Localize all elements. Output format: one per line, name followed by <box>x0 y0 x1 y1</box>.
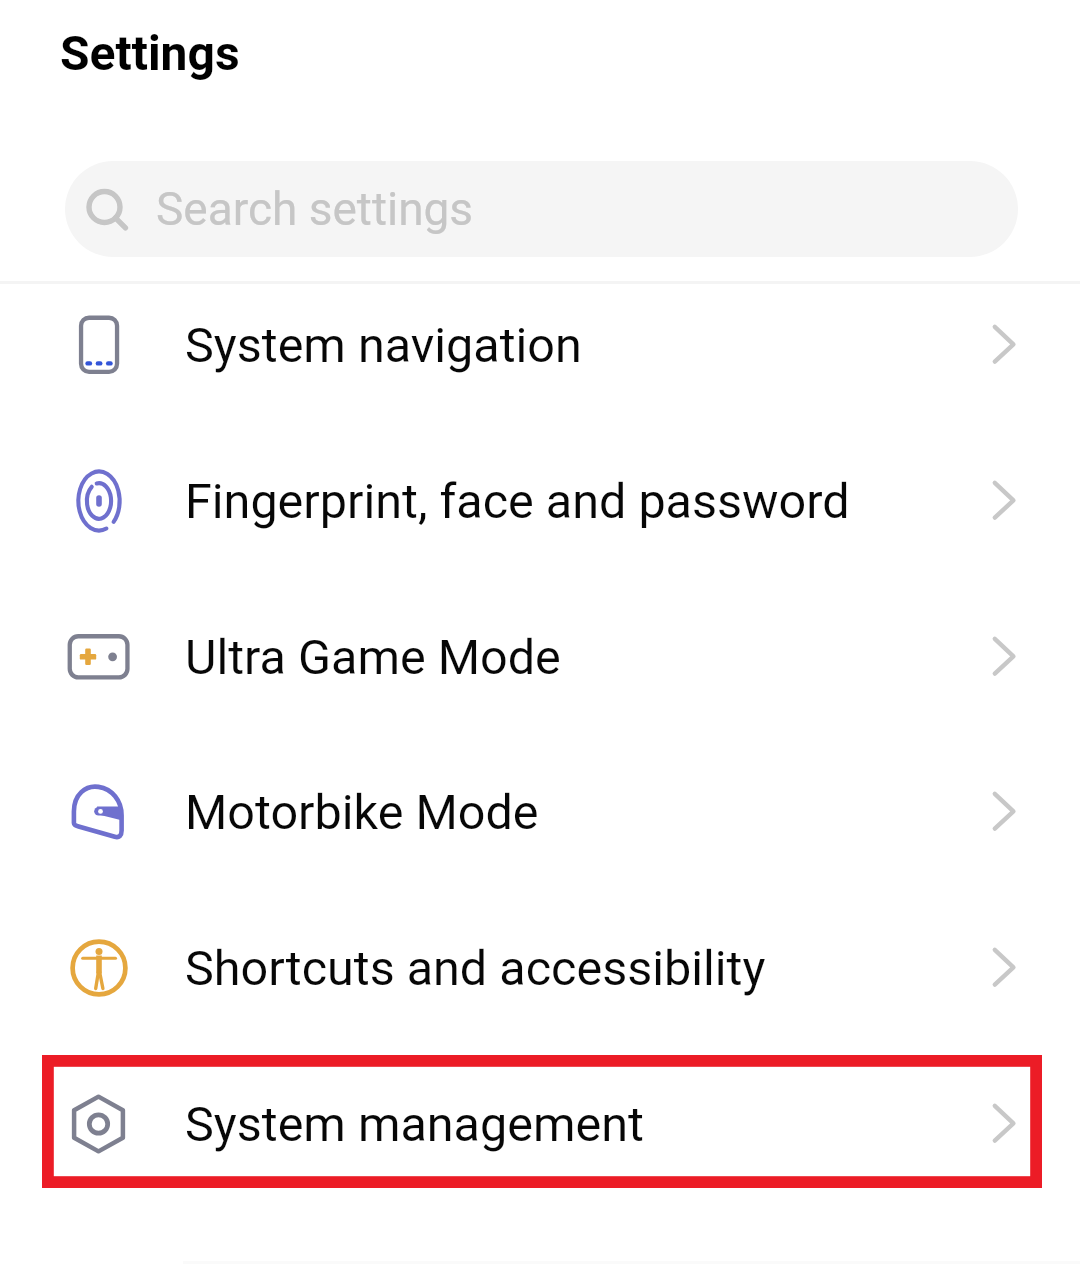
button[interactable]: Motorbike Mode <box>0 734 1080 890</box>
staticText: System navigation <box>185 317 582 374</box>
staticText: Search settings <box>156 182 474 236</box>
button[interactable]: System management <box>0 1046 1080 1202</box>
staticText: Motorbike Mode <box>185 784 539 841</box>
button[interactable]: Search settings <box>65 161 1018 257</box>
button[interactable]: System navigation <box>0 267 1080 423</box>
staticText: System management <box>185 1096 644 1153</box>
staticText: Shortcuts and accessibility <box>185 940 766 997</box>
button[interactable]: Fingerprint, face and password <box>0 423 1080 579</box>
staticText: Settings <box>60 25 240 81</box>
button[interactable]: Ultra Game Mode <box>0 579 1080 735</box>
button[interactable]: Shortcuts and accessibility <box>0 890 1080 1046</box>
staticText: Fingerprint, face and password <box>185 473 850 530</box>
staticText: Ultra Game Mode <box>185 629 561 686</box>
